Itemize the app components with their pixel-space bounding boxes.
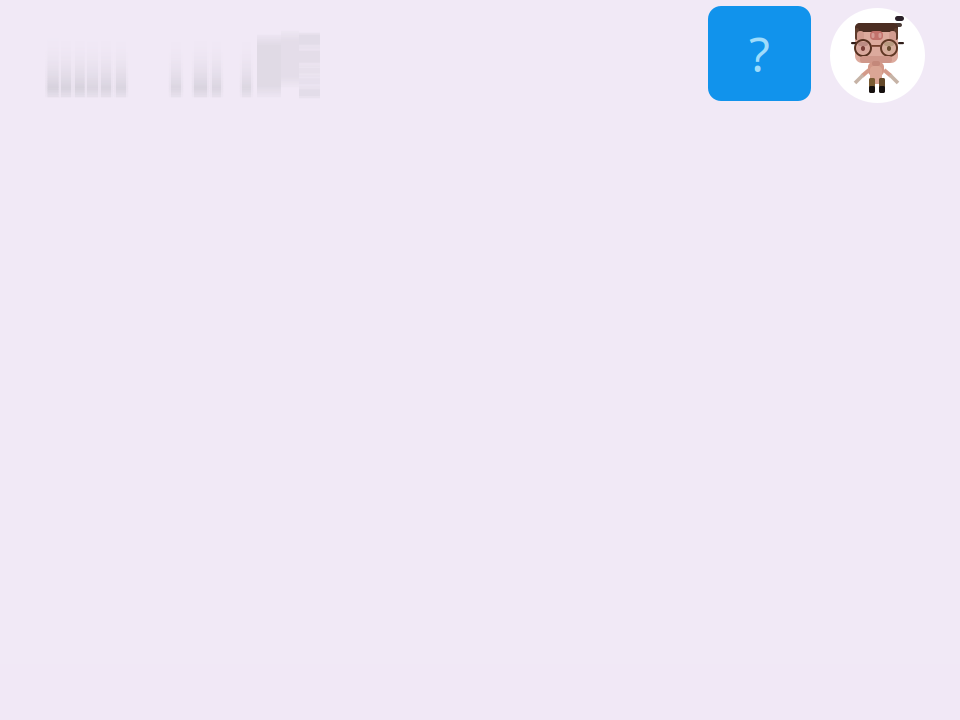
button[interactable]: Help [708,6,811,101]
button[interactable]: Profile [830,8,925,103]
staticText: ? [749,22,770,85]
